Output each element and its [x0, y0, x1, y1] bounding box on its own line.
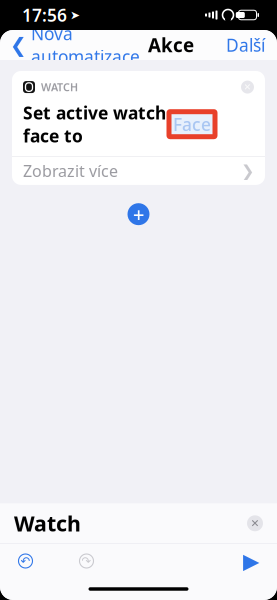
staticText: Zobrazit více — [23, 160, 118, 181]
staticText: ➤ — [70, 8, 80, 22]
staticText: ❯ — [241, 162, 254, 180]
button[interactable]: Znovu — [33, 553, 94, 568]
staticText: + — [133, 201, 144, 227]
button[interactable]: Přidat akci — [127, 201, 149, 227]
staticText: Akce — [148, 33, 194, 57]
staticText: Nová automatizace — [31, 22, 140, 68]
staticText: 17:56 — [22, 3, 67, 26]
button[interactable]: Vymazat — [247, 515, 263, 531]
staticText: ↷ — [81, 554, 91, 568]
staticText: Watch — [14, 509, 81, 537]
staticText: ✕ — [250, 517, 259, 529]
staticText: WATCH — [41, 80, 78, 94]
button[interactable]: Spustit — [243, 549, 277, 573]
staticText: ❮ — [10, 34, 27, 56]
button[interactable]: Další — [226, 25, 277, 64]
button[interactable]: Zobrazit více — [12, 157, 265, 185]
staticText: Set active watch face to — [23, 101, 166, 147]
button[interactable]: Odstranit akci — [241, 81, 254, 94]
staticText: Další — [226, 33, 265, 56]
staticText: Face — [173, 113, 211, 136]
button[interactable]: Face — [169, 112, 215, 137]
staticText: ✕ — [243, 82, 251, 92]
button[interactable]: ❮ — [0, 14, 140, 76]
button[interactable]: Zpět — [0, 553, 33, 568]
staticText: ↶ — [20, 554, 30, 568]
staticText: ▶ — [243, 549, 259, 573]
